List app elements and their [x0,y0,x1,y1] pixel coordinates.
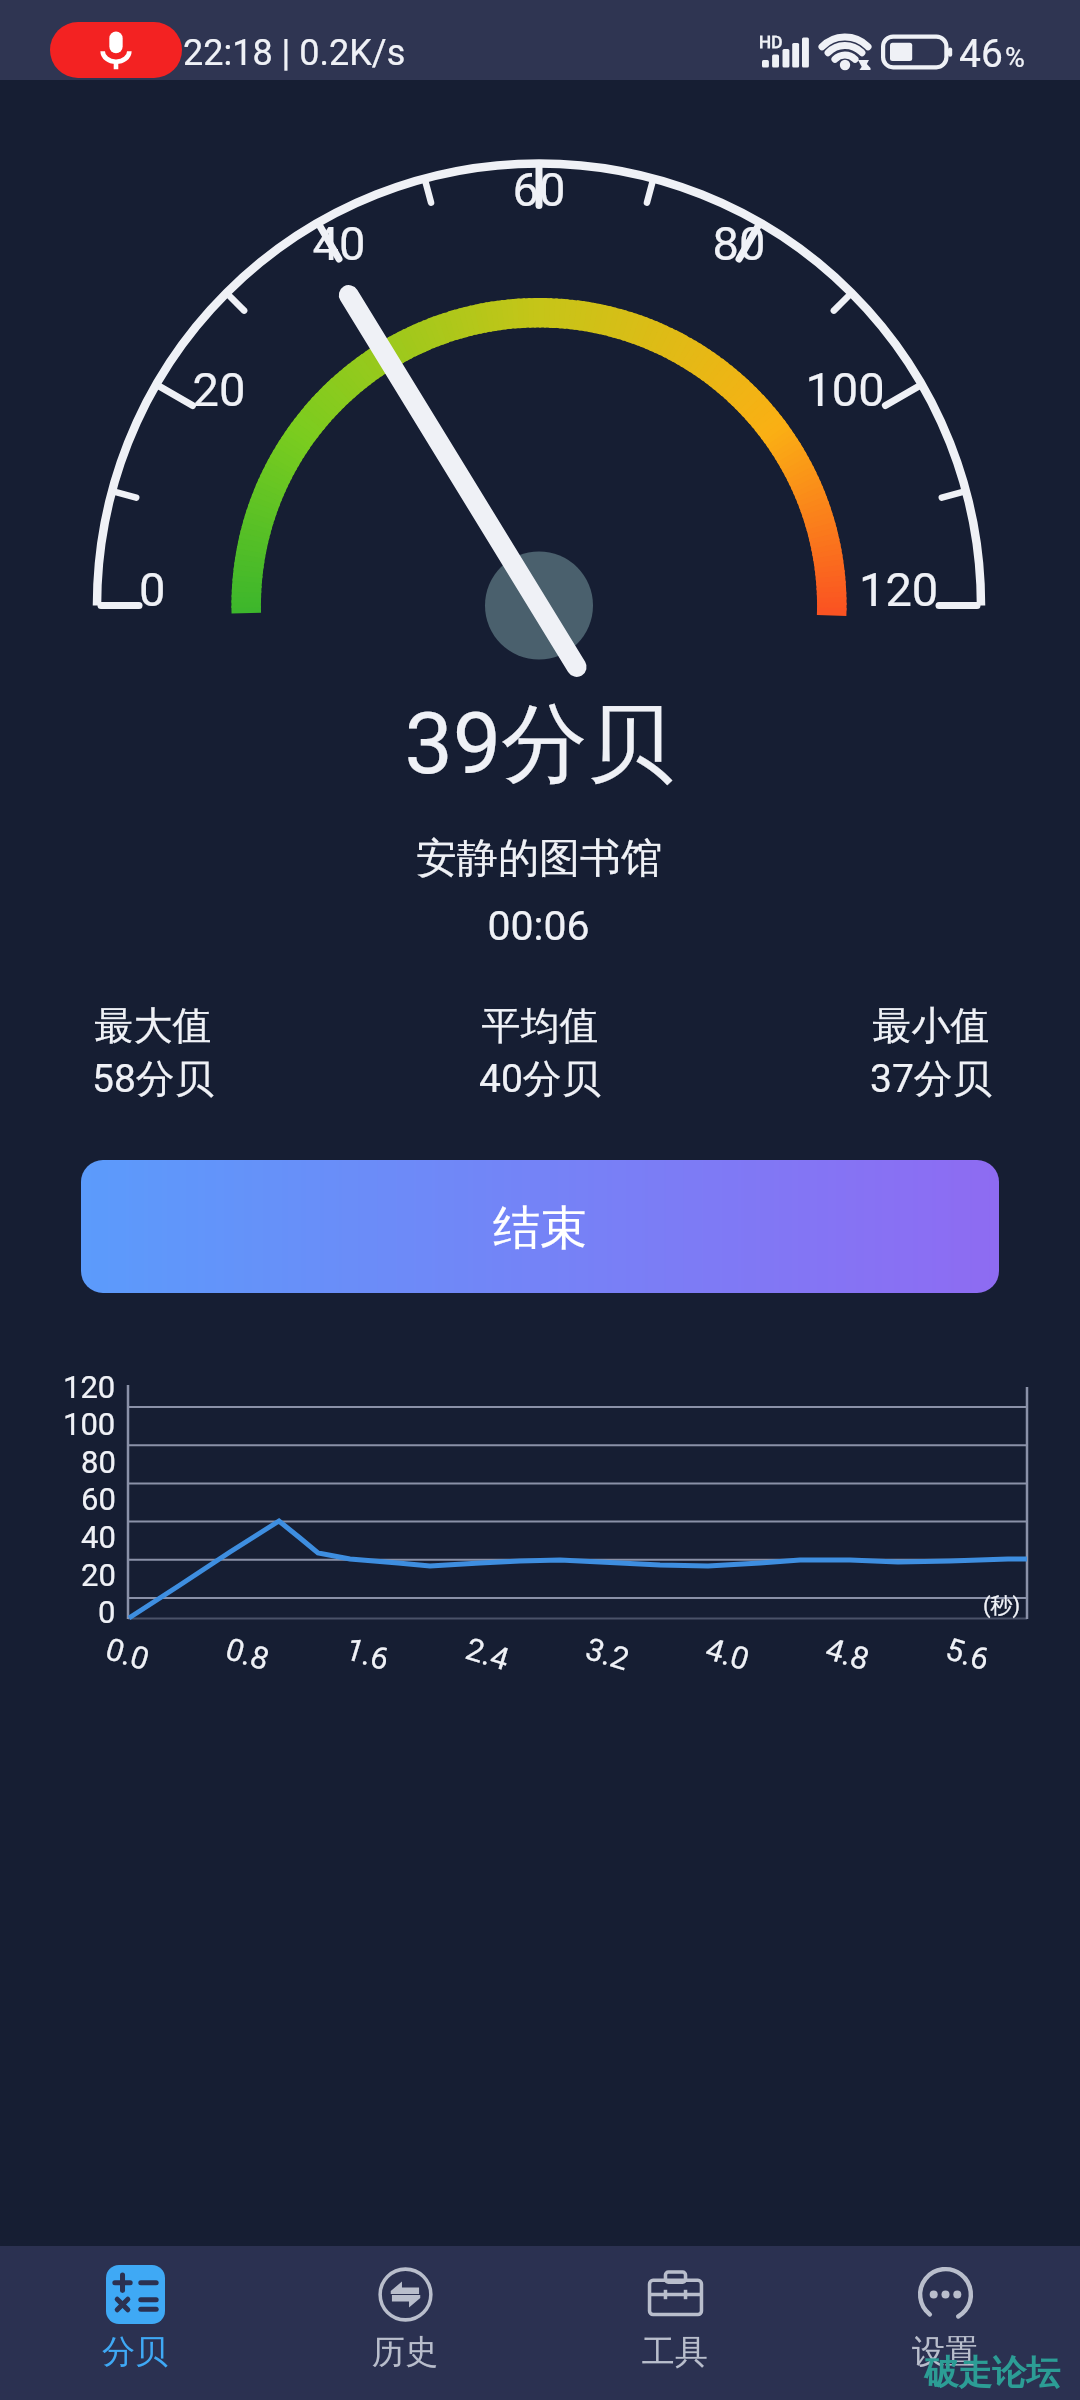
button[interactable] [81,1160,999,1293]
button[interactable] [540,2246,810,2400]
button[interactable] [0,2246,270,2400]
button[interactable]: Recording indicator [50,22,182,78]
button[interactable] [270,2246,540,2400]
button[interactable] [810,2246,1080,2400]
